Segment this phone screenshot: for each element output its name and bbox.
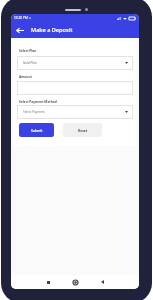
staticText: Reset [78, 128, 88, 132]
button[interactable]: Reset [63, 123, 102, 137]
staticText: Amount [19, 75, 32, 79]
staticText: Select Plan [19, 49, 37, 53]
button[interactable]: Recent apps [41, 275, 55, 289]
staticText: Gold Plan [23, 61, 37, 65]
staticText: Make a Deposit [31, 26, 73, 34]
button[interactable] [17, 81, 133, 95]
button[interactable]: Back [95, 275, 109, 289]
staticText: 13.20 PM [14, 16, 28, 20]
staticText: Select Payment Method [19, 100, 57, 104]
button[interactable]: Select Payment [17, 105, 133, 119]
button[interactable]: Back [14, 24, 26, 36]
staticText: Submit [31, 128, 43, 132]
button[interactable]: Home [68, 275, 82, 289]
staticText: Select Payment [23, 110, 45, 114]
button[interactable]: Gold Plan [17, 56, 133, 70]
button[interactable]: Submit [19, 123, 54, 137]
